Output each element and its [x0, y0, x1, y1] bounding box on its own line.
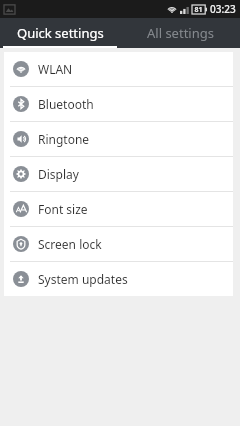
button[interactable]: WLAN [4, 52, 233, 86]
staticText: WLAN [38, 61, 73, 77]
staticText: Quick settings [17, 24, 104, 42]
button[interactable]: Display [4, 157, 233, 191]
staticText: System updates [38, 271, 128, 287]
staticText: 81 [194, 5, 203, 14]
staticText: Screen lock [38, 236, 102, 252]
staticText: Font size [38, 201, 88, 217]
staticText: 03:23 [210, 2, 236, 16]
button[interactable]: System updates [4, 262, 233, 296]
button[interactable]: Ringtone [4, 122, 233, 156]
button[interactable]: Screen lock [4, 227, 233, 261]
button[interactable]: Quick settings [0, 18, 120, 48]
staticText: All settings [147, 24, 214, 42]
staticText: Display [38, 166, 79, 182]
staticText: Bluetooth [38, 96, 94, 112]
button[interactable]: Font size [4, 192, 233, 226]
button[interactable]: All settings [120, 18, 240, 48]
button[interactable]: Bluetooth [4, 87, 233, 121]
staticText: Ringtone [38, 131, 90, 147]
